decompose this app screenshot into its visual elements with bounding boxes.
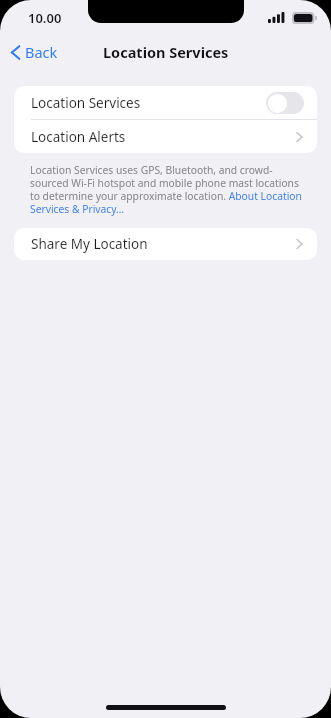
- other: Open: [296, 238, 303, 250]
- staticText: Share My Location: [31, 235, 148, 253]
- staticText: Back: [25, 42, 58, 62]
- button[interactable]: Location Services: [14, 86, 317, 119]
- button[interactable]: Location Alerts: [14, 120, 317, 153]
- staticText: 10.00: [28, 9, 62, 27]
- button[interactable]: Back: [0, 39, 68, 65]
- staticText: Location Alerts: [31, 128, 126, 146]
- other: Open: [296, 131, 303, 143]
- staticText: Location Services uses GPS, Bluetooth, a…: [30, 163, 309, 216]
- staticText: Location Services: [31, 94, 141, 112]
- button[interactable]: Share My Location: [14, 228, 317, 260]
- staticText: Location Services: [103, 42, 229, 62]
